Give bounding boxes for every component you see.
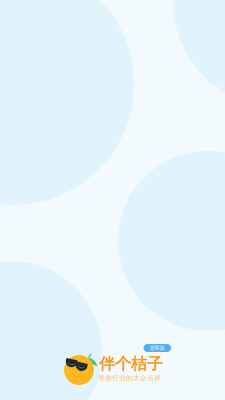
staticText: 伴个桔子: [99, 354, 163, 374]
staticText: 游客版: [150, 345, 165, 351]
button[interactable]: 游客版: [143, 344, 171, 352]
staticText: 导游行业的大众点评: [98, 374, 161, 382]
